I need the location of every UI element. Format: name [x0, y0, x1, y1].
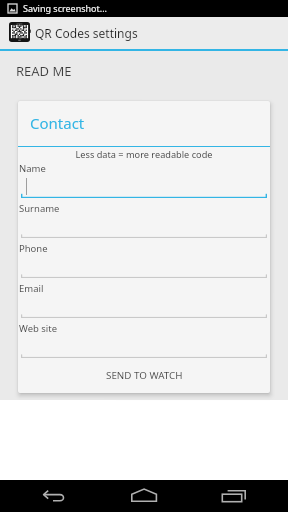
staticText: Phone: [19, 242, 48, 255]
staticText: QR Codes settings: [35, 25, 138, 41]
staticText: Web site: [19, 322, 58, 335]
staticText: READ ME: [16, 62, 72, 80]
staticText: Contact: [30, 113, 85, 133]
button[interactable]: Home: [120, 480, 168, 512]
staticText: Name: [19, 162, 46, 175]
staticText: SEND TO WATCH: [106, 369, 183, 382]
staticText: Email: [19, 282, 44, 295]
staticText: Surname: [19, 202, 60, 215]
button[interactable]: Back: [31, 480, 79, 512]
staticText: Less data = more readable code: [18, 148, 270, 161]
button[interactable]: SEND TO WATCH: [18, 358, 270, 393]
staticText: Saving screenshot...: [23, 2, 108, 14]
button[interactable]: Recent apps: [208, 480, 256, 512]
